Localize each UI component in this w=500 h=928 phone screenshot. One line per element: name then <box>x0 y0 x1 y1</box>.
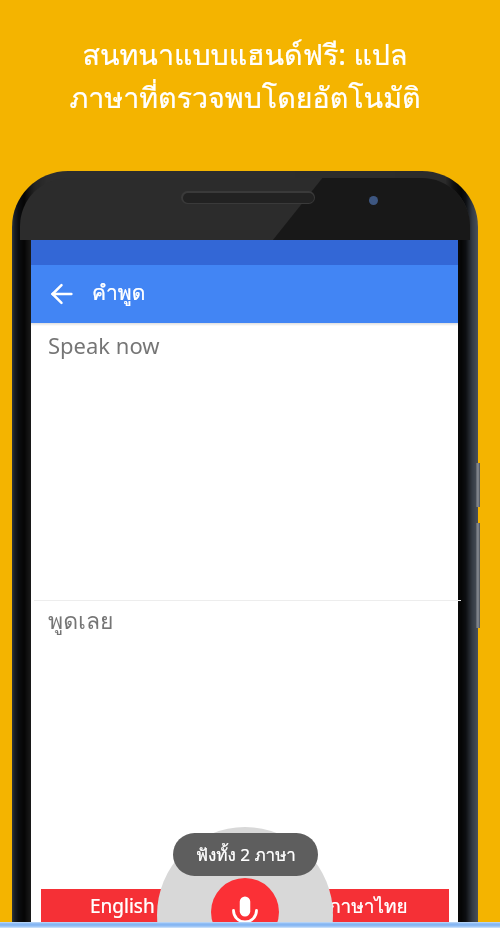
staticText: English <box>90 893 155 919</box>
button[interactable]: ภาษาไทย <box>326 889 410 923</box>
staticText: ฟังทั้ง 2 ภาษา <box>196 841 296 868</box>
button[interactable]: พูดเลย <box>31 601 458 640</box>
staticText: Speak now <box>48 330 160 360</box>
button[interactable]: Speak now <box>31 326 458 600</box>
button[interactable]: Back <box>46 278 78 310</box>
button[interactable]: ฟังทั้ง 2 ภาษา <box>173 833 318 876</box>
staticText: คำพูด <box>92 276 146 309</box>
staticText: สนทนาแบบแฮนด์ฟรี: แปล ภาษาที่ตรวจพบโดยอั… <box>69 32 421 121</box>
staticText: พูดเลย <box>48 603 114 640</box>
button[interactable]: Microphone <box>211 878 279 928</box>
button[interactable]: Back <box>31 265 458 323</box>
button[interactable]: English <box>90 889 155 923</box>
staticText: ภาษาไทย <box>328 891 408 921</box>
